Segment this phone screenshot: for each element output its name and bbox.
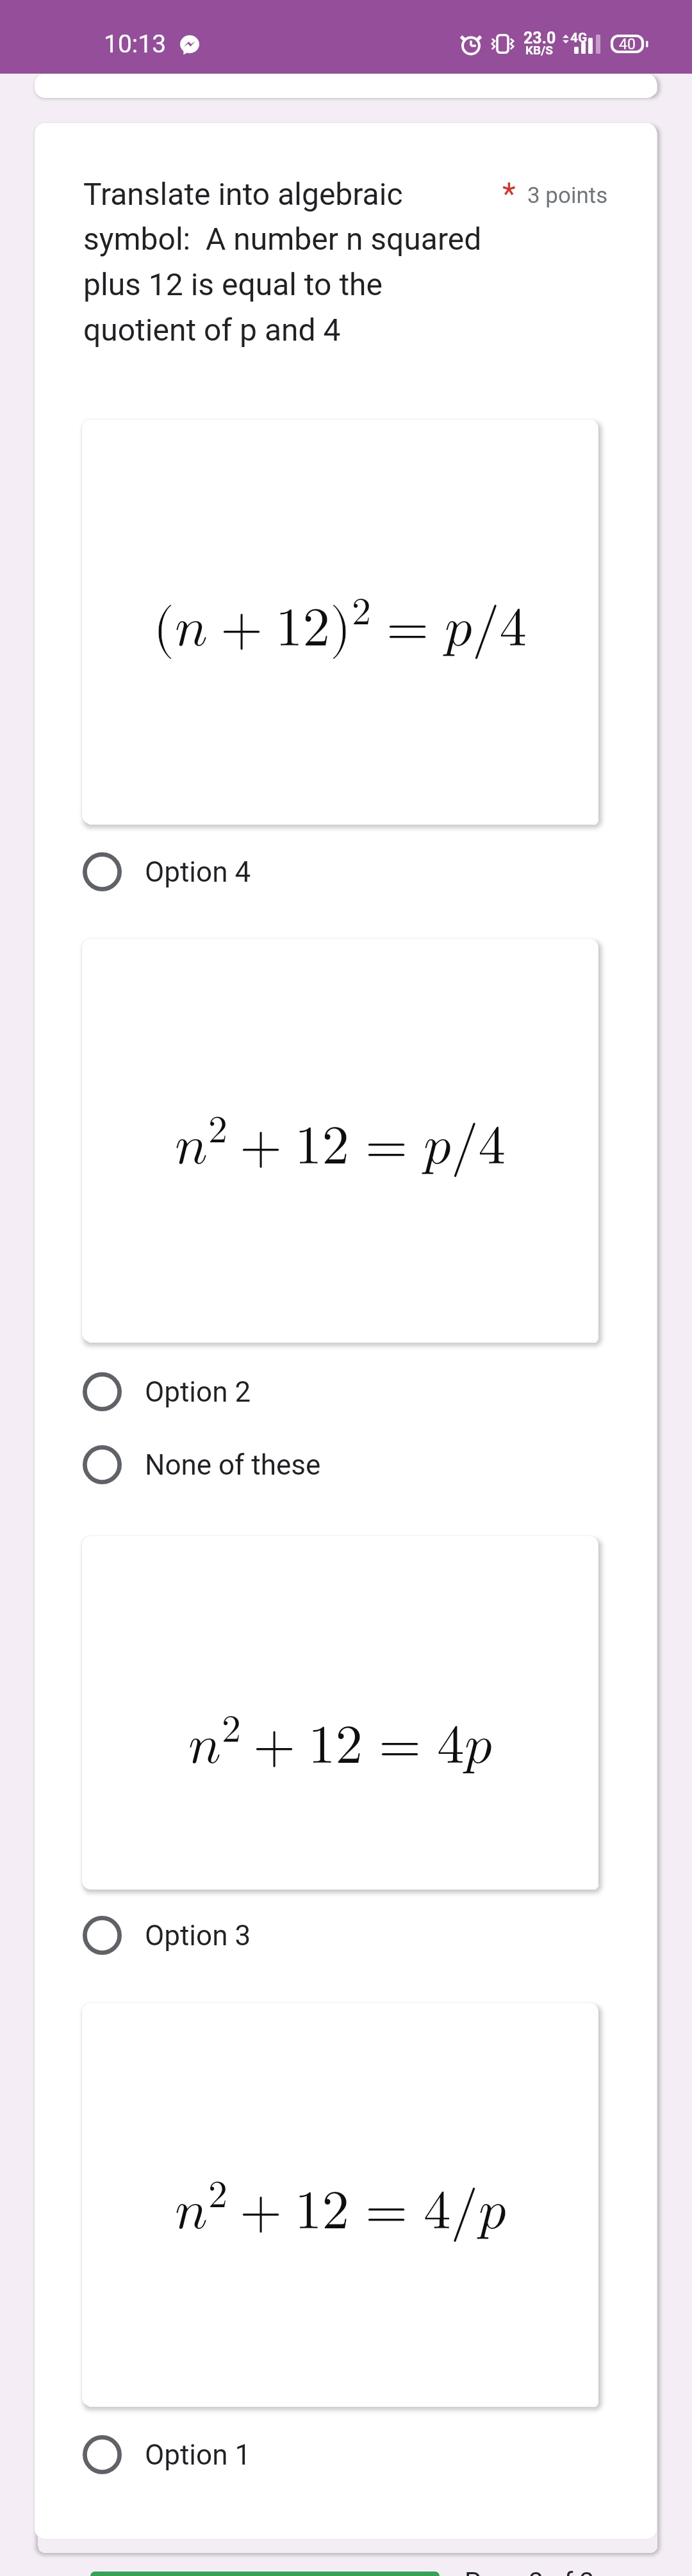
button[interactable]: Option 4: [35, 851, 657, 890]
staticText: 𝑝: [424, 1119, 451, 1174]
staticText: 𝑝: [465, 1719, 492, 1773]
button[interactable]: None of these: [35, 1444, 657, 1483]
staticText: 𝑝: [445, 601, 472, 656]
button[interactable]: Option 3: [35, 1915, 657, 1954]
staticText: +: [240, 1119, 283, 1174]
staticText: 12: [295, 2184, 350, 2239]
staticText: 2: [222, 1711, 241, 1749]
staticText: 23.0: [523, 29, 556, 47]
staticText: 2: [352, 594, 371, 632]
staticText: Page 2 of 2: [465, 2567, 594, 2576]
staticText: =: [365, 1119, 408, 1174]
staticText: =: [379, 1719, 422, 1773]
staticText: Option 2: [145, 1375, 251, 1409]
staticText: 3 points: [527, 182, 608, 209]
staticText: =: [386, 601, 429, 656]
button[interactable]: Option 1: [35, 2434, 657, 2473]
staticText: 12: [295, 1119, 350, 1174]
staticText: 40: [619, 36, 636, 53]
staticText: (: [153, 601, 175, 656]
staticText: None of these: [145, 1448, 321, 1482]
other: Messenger: [180, 35, 199, 54]
staticText: 12: [308, 1719, 363, 1773]
staticText: /4: [472, 601, 527, 656]
staticText: KB/S: [525, 43, 553, 57]
staticText: 𝑛: [175, 2184, 208, 2239]
staticText: +: [253, 1719, 296, 1773]
staticText: +: [240, 2184, 283, 2239]
staticText: 12): [276, 601, 352, 656]
staticText: 2: [208, 2176, 227, 2215]
staticText: 4: [437, 1719, 465, 1773]
staticText: Option 4: [145, 855, 251, 889]
staticText: 10:13: [104, 29, 167, 59]
staticText: 𝑛: [175, 1119, 208, 1174]
staticText: 2: [208, 1112, 227, 1150]
button[interactable]: [90, 2572, 440, 2576]
button[interactable]: Option 2: [35, 1371, 657, 1410]
staticText: /4: [451, 1119, 506, 1174]
staticText: 4G: [570, 30, 588, 46]
staticText: 𝑛: [188, 1719, 222, 1773]
staticText: 𝑝: [479, 2184, 506, 2239]
staticText: *: [502, 175, 516, 211]
staticText: Option 1: [145, 2438, 251, 2472]
staticText: Translate into algebraic symbol: A numbe…: [83, 176, 482, 348]
staticText: 4/: [424, 2184, 479, 2239]
staticText: +: [220, 601, 263, 656]
staticText: Option 3: [145, 1919, 251, 1952]
staticText: =: [365, 2184, 408, 2239]
staticText: 𝑛: [175, 601, 208, 656]
